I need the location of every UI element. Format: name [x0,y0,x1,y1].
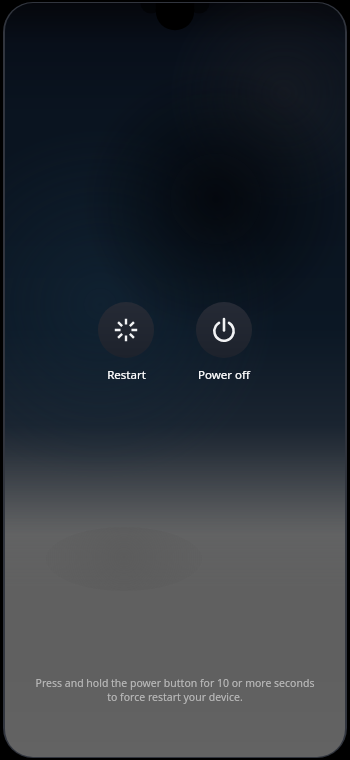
button[interactable]: Power off [185,302,263,383]
staticText: Power off [198,367,250,383]
staticText: Press and hold the power button for 10 o… [31,676,319,704]
button[interactable]: Restart [87,302,165,383]
staticText: Restart [107,367,146,383]
